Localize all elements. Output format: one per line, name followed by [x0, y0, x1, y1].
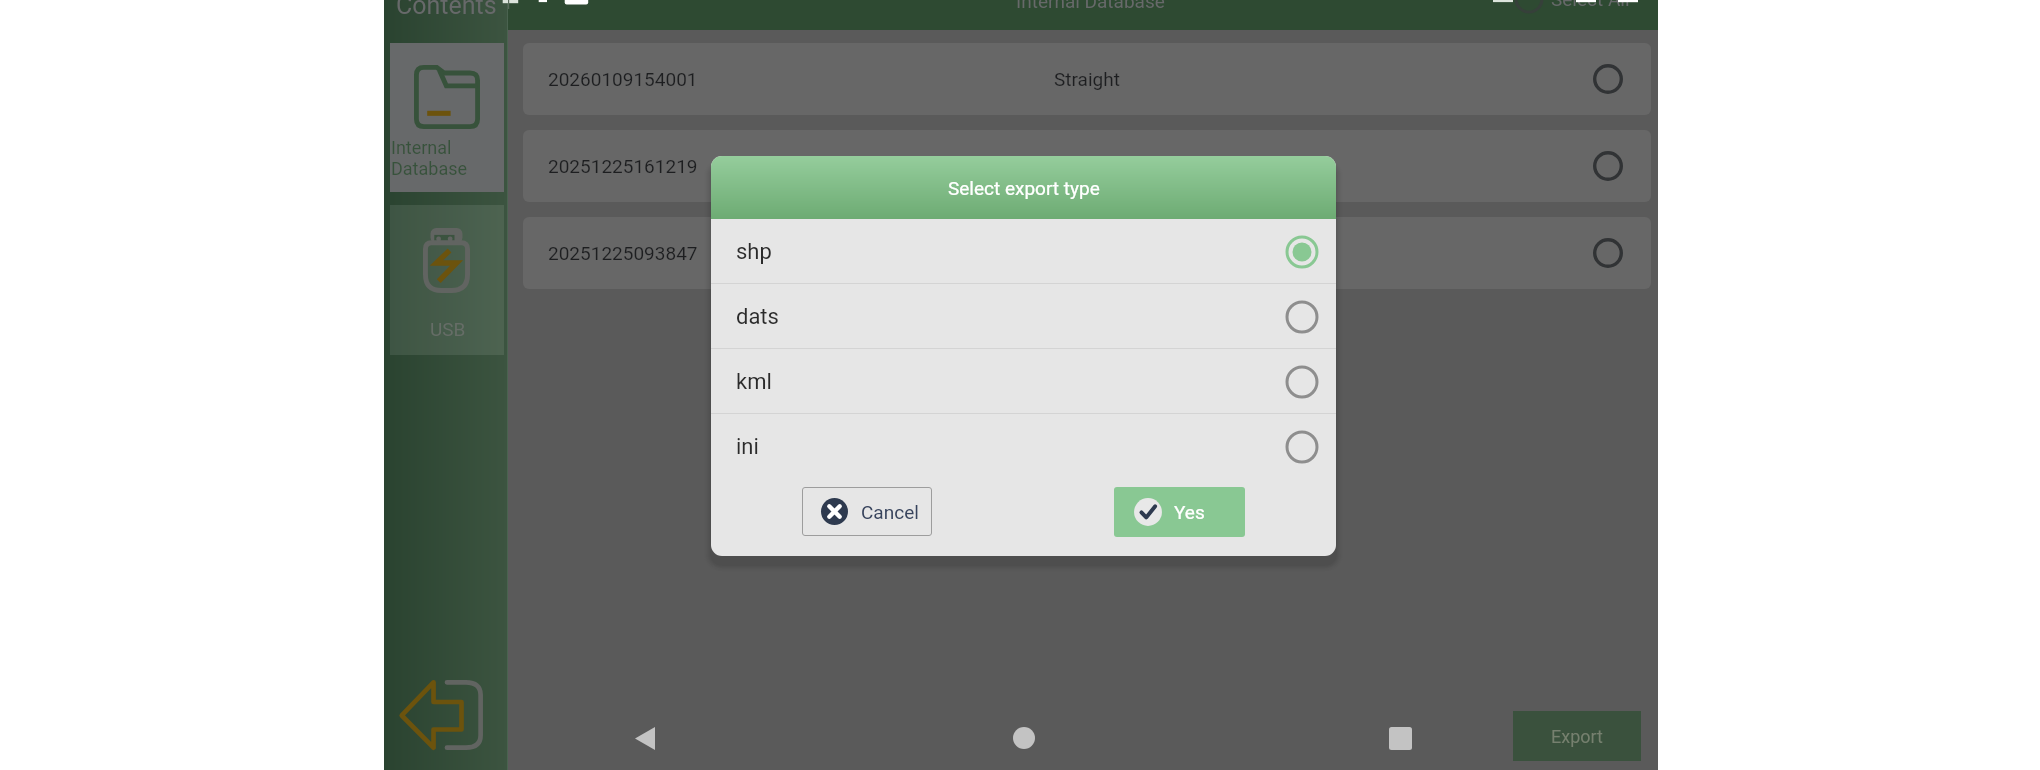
button[interactable]: Home	[1004, 718, 1044, 758]
button[interactable]: USB	[390, 205, 504, 355]
staticText: USB	[430, 318, 466, 340]
button[interactable]: Cancel	[802, 487, 932, 536]
button[interactable]: Back	[625, 718, 665, 758]
staticText: Cancel	[861, 501, 919, 523]
button[interactable]: Yes	[1114, 487, 1245, 537]
staticText: Select All	[1551, 0, 1630, 10]
button[interactable]: 20260109154001	[523, 43, 1651, 115]
staticText: ini	[736, 434, 759, 460]
button[interactable]: kml	[711, 349, 1336, 414]
staticText: Internal Database	[1016, 0, 1165, 12]
staticText: kml	[736, 369, 772, 395]
staticText: Contents	[396, 0, 497, 20]
staticText: dats	[736, 304, 779, 330]
button[interactable]: Recents	[1380, 718, 1420, 758]
button[interactable]: Exit	[392, 670, 492, 760]
button[interactable]: 20251225093847	[523, 217, 1651, 289]
button[interactable]: Internal Database	[390, 43, 504, 192]
staticText: 20251225093847	[548, 242, 698, 264]
staticText: Straight	[1054, 155, 1120, 177]
staticText: Select export type	[948, 177, 1100, 199]
staticText: 20251225161219	[548, 155, 698, 177]
staticText: Yes	[1174, 501, 1205, 523]
button[interactable]: 20251225161219	[523, 130, 1651, 202]
staticText: Straight	[1054, 68, 1120, 90]
staticText: shp	[736, 239, 772, 265]
button[interactable]: Export	[1513, 711, 1641, 761]
staticText: Internal Database	[391, 137, 468, 179]
staticText: Export	[1551, 726, 1603, 747]
button[interactable]: dats	[711, 284, 1336, 349]
staticText: 20260109154001	[548, 68, 698, 90]
button[interactable]: Select All	[1514, 0, 1630, 14]
button[interactable]: ini	[711, 414, 1336, 479]
button[interactable]: shp	[711, 219, 1336, 284]
